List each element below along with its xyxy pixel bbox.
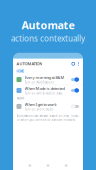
- button[interactable]: Every morning at 8AM: [13, 74, 83, 85]
- staticText: Automate: [21, 18, 74, 32]
- button[interactable]: Search: [71, 62, 75, 66]
- button[interactable]: Home: [47, 164, 49, 167]
- staticText: Turn on silent mode: [24, 108, 53, 111]
- button[interactable]: Back: [29, 164, 31, 167]
- staticText: When Mode is detected: [24, 86, 64, 91]
- staticText: When I get to work: [24, 102, 56, 107]
- button[interactable]: When I get to work: [13, 101, 83, 112]
- button[interactable]: Recents: [65, 164, 67, 167]
- staticText: Every morning at 8AM: [24, 75, 64, 80]
- staticText: or when you connect to a known network.: [16, 118, 75, 122]
- button[interactable]: More options: [77, 61, 79, 66]
- staticText: WORK: [16, 97, 24, 100]
- staticText: Turn on wifi & mobile data: [24, 92, 61, 95]
- staticText: actions contextually: [11, 33, 85, 44]
- staticText: HOME: [16, 70, 23, 73]
- button[interactable]: When Mode is detected: [13, 85, 83, 96]
- staticText: Turn on Notifications: [24, 81, 53, 84]
- staticText: AUTOMATION: [16, 61, 42, 66]
- staticText: Automations can activate based on time, …: [16, 114, 79, 118]
